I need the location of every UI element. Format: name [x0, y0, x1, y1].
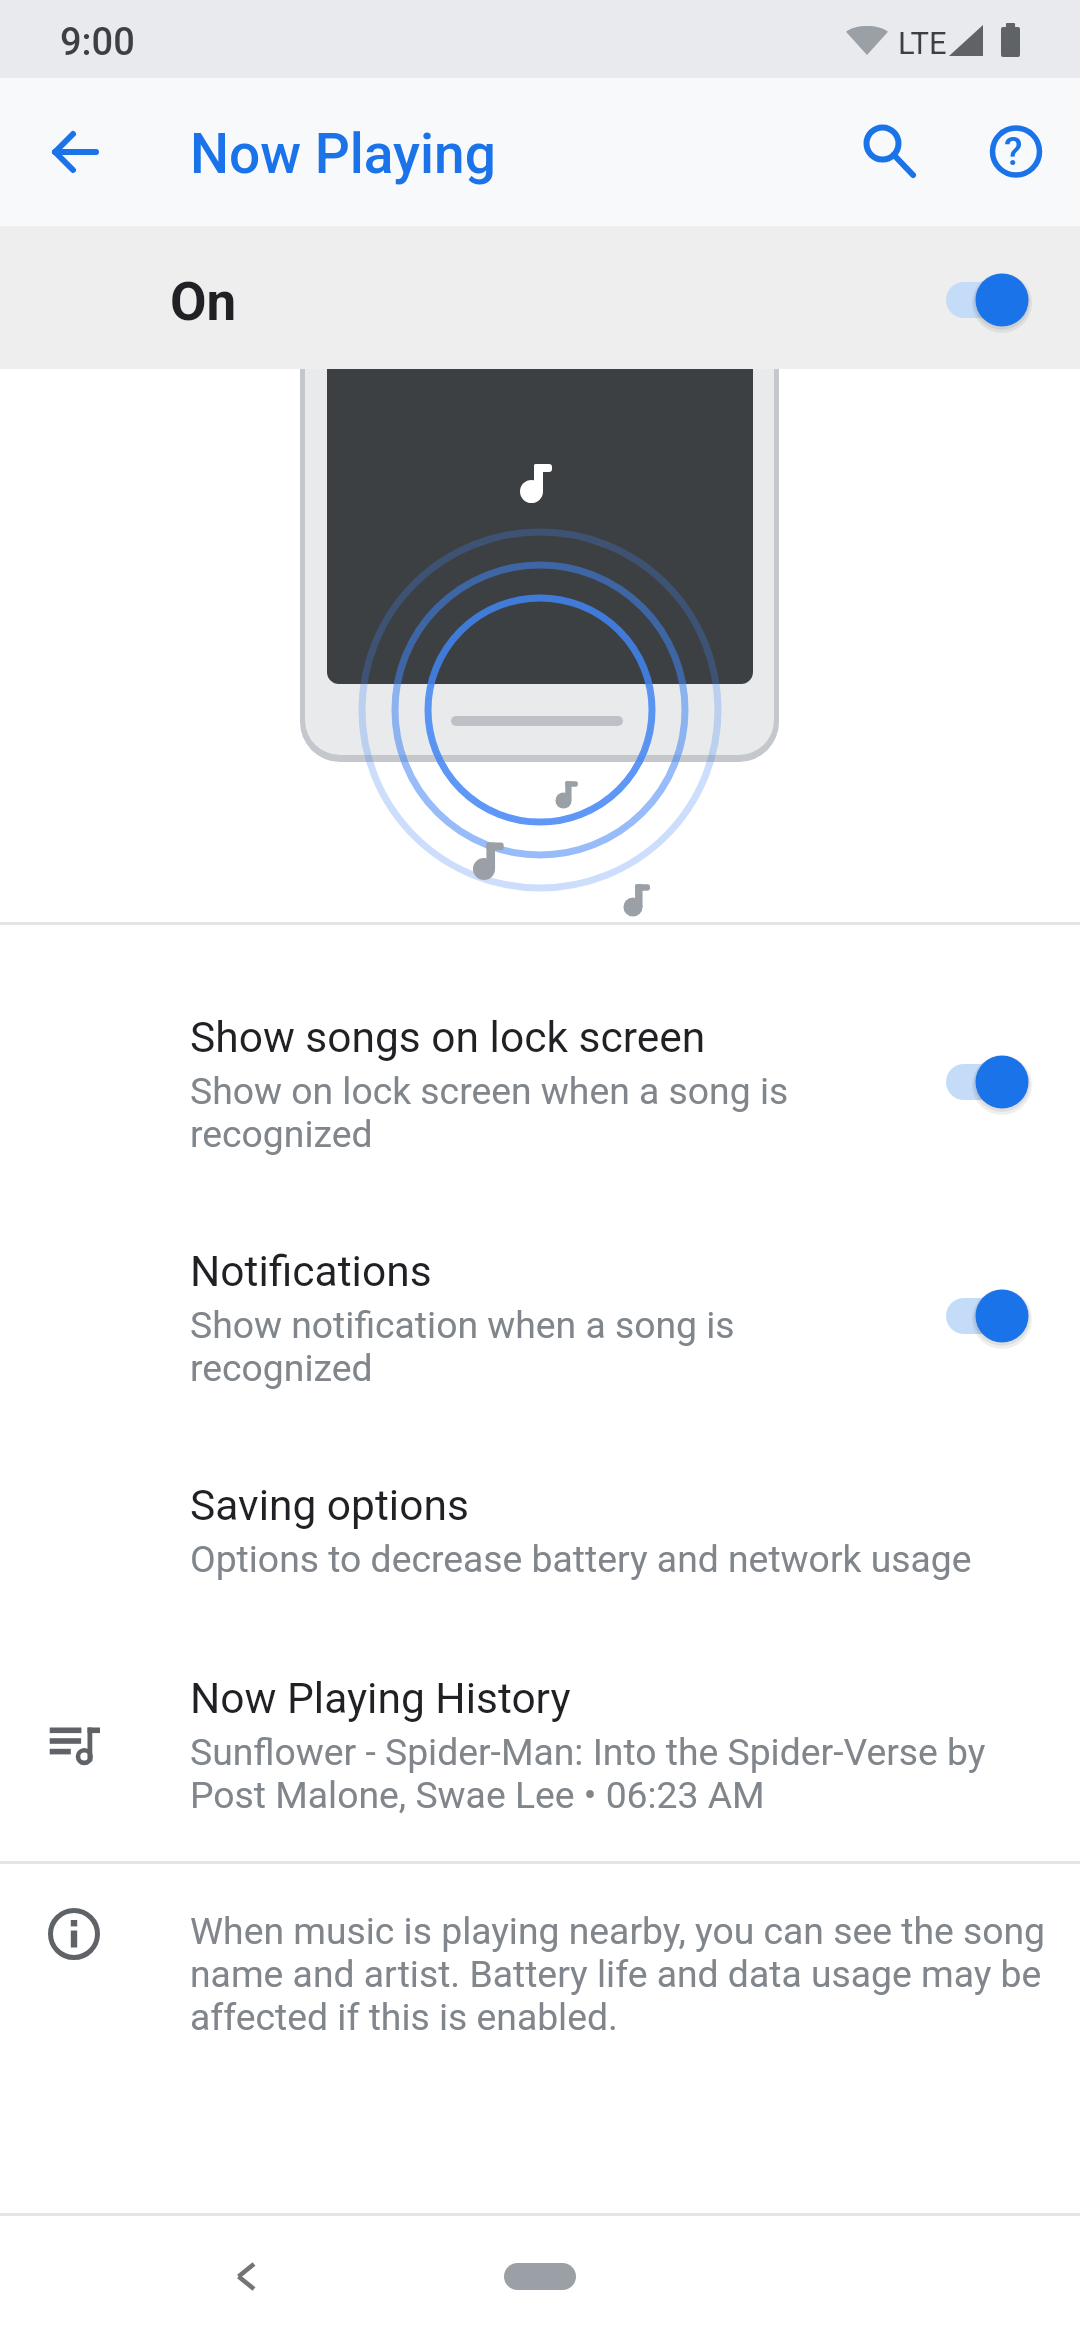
button[interactable] [0, 1450, 1080, 1582]
staticText: Show on lock screen when a song is recog… [190, 1069, 789, 1156]
staticText: Now Playing History [190, 1674, 571, 1724]
button[interactable] [0, 982, 1080, 1162]
staticText: ? [1004, 130, 1023, 175]
staticText: Sunflower - Spider-Man: Into the Spider-… [190, 1730, 986, 1817]
button[interactable]: Navigate up [27, 104, 123, 200]
staticText: When music is playing nearby, you can se… [190, 1909, 1046, 2039]
button[interactable]: On [0, 226, 1080, 369]
staticText: Saving options [190, 1481, 469, 1531]
button[interactable]: Search [842, 104, 938, 200]
staticText: Show notification when a song is recogni… [190, 1303, 735, 1390]
staticText: Now Playing [190, 122, 496, 186]
staticText: Show songs on lock screen [190, 1013, 706, 1063]
staticText: LTE [898, 25, 947, 61]
button[interactable]: Back [202, 2232, 290, 2320]
staticText: Notifications [190, 1247, 432, 1297]
staticText: Options to decrease battery and network … [190, 1537, 972, 1581]
button[interactable] [0, 1216, 1080, 1396]
button[interactable]: Help [968, 104, 1064, 200]
staticText: 9:00 [60, 20, 135, 65]
staticText: On [170, 271, 237, 333]
button[interactable] [0, 1643, 1080, 1823]
button[interactable]: Home [504, 2263, 576, 2290]
